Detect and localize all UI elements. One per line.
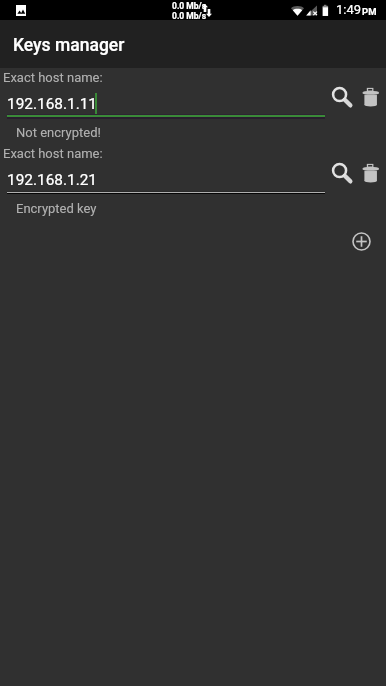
staticText: Exact host name: — [3, 70, 103, 85]
staticText: Not encrypted! — [16, 125, 101, 140]
staticText: Exact host name: — [3, 146, 103, 161]
button[interactable]: Delete — [357, 160, 383, 186]
button[interactable]: Keys manager — [0, 20, 386, 68]
button[interactable]: Delete — [357, 84, 383, 110]
staticText: 192.168.1.21 — [7, 171, 98, 189]
button[interactable]: Search — [329, 84, 355, 110]
staticText: Keys manager — [13, 35, 125, 56]
staticText: Encrypted key — [16, 201, 97, 216]
staticText: 0.0 Mb/s — [172, 11, 207, 21]
staticText: 0.0 Mb/s — [172, 1, 207, 11]
staticText: 1:49 — [336, 2, 362, 17]
staticText: 192.168.1.11 — [7, 95, 98, 113]
staticText: PM — [362, 6, 377, 17]
button[interactable]: Add key — [348, 228, 375, 255]
button[interactable]: Search — [329, 160, 355, 186]
